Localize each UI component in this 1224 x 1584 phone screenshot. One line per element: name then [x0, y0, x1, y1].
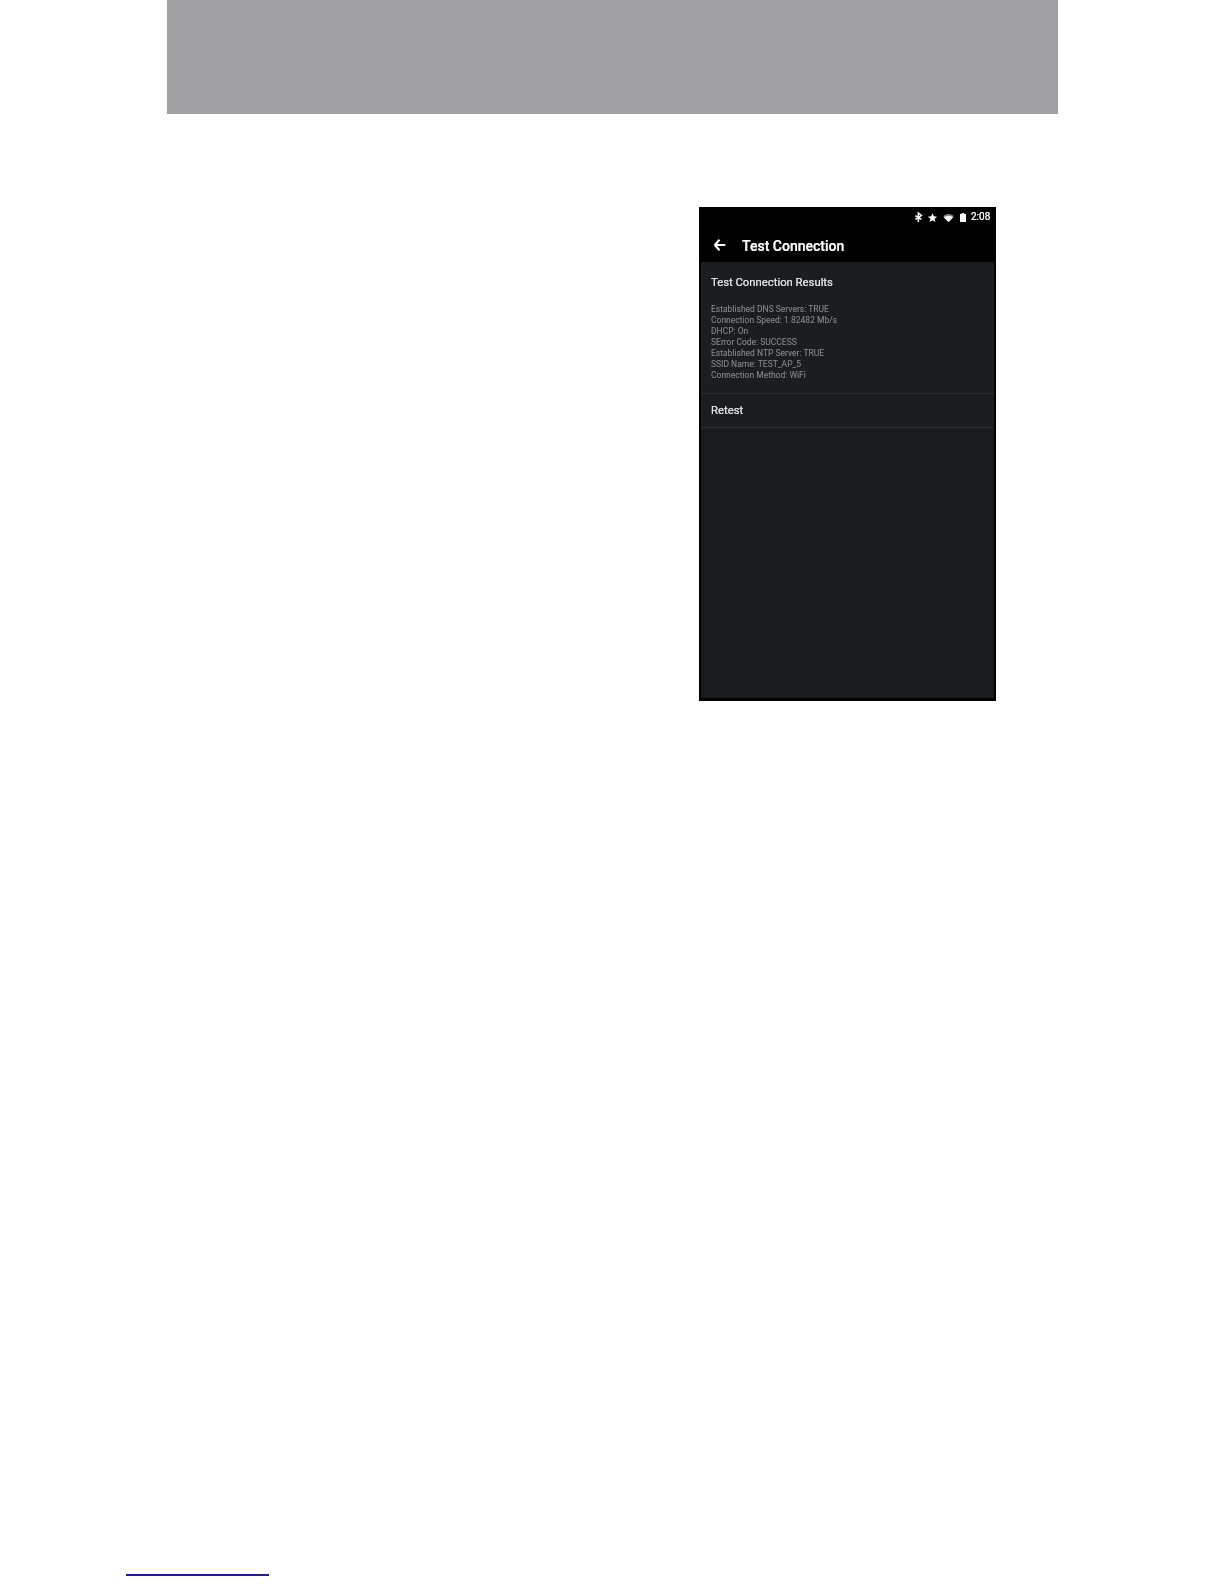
staticText: Established DNS Servers: TRUE: [711, 304, 829, 314]
staticText: Connection Method: WiFi: [711, 370, 806, 380]
button[interactable]: Retest: [699, 394, 996, 427]
staticText: Test Connection Results: [711, 276, 833, 289]
staticText: SSID Name: TEST_AP_5: [711, 359, 802, 369]
button[interactable]: Test Connection Results: [699, 262, 996, 393]
staticText: 2:08: [971, 211, 991, 223]
staticText: SError Code: SUCCESS: [711, 337, 797, 347]
staticText: Test Connection: [742, 238, 845, 254]
staticText: Connection Speed: 1.82482 Mb/s: [711, 315, 838, 325]
staticText: Retest: [711, 404, 744, 417]
staticText: Established NTP Server: TRUE: [711, 348, 825, 358]
button[interactable]: Back: [709, 234, 731, 256]
staticText: DHCP: On: [711, 326, 749, 336]
